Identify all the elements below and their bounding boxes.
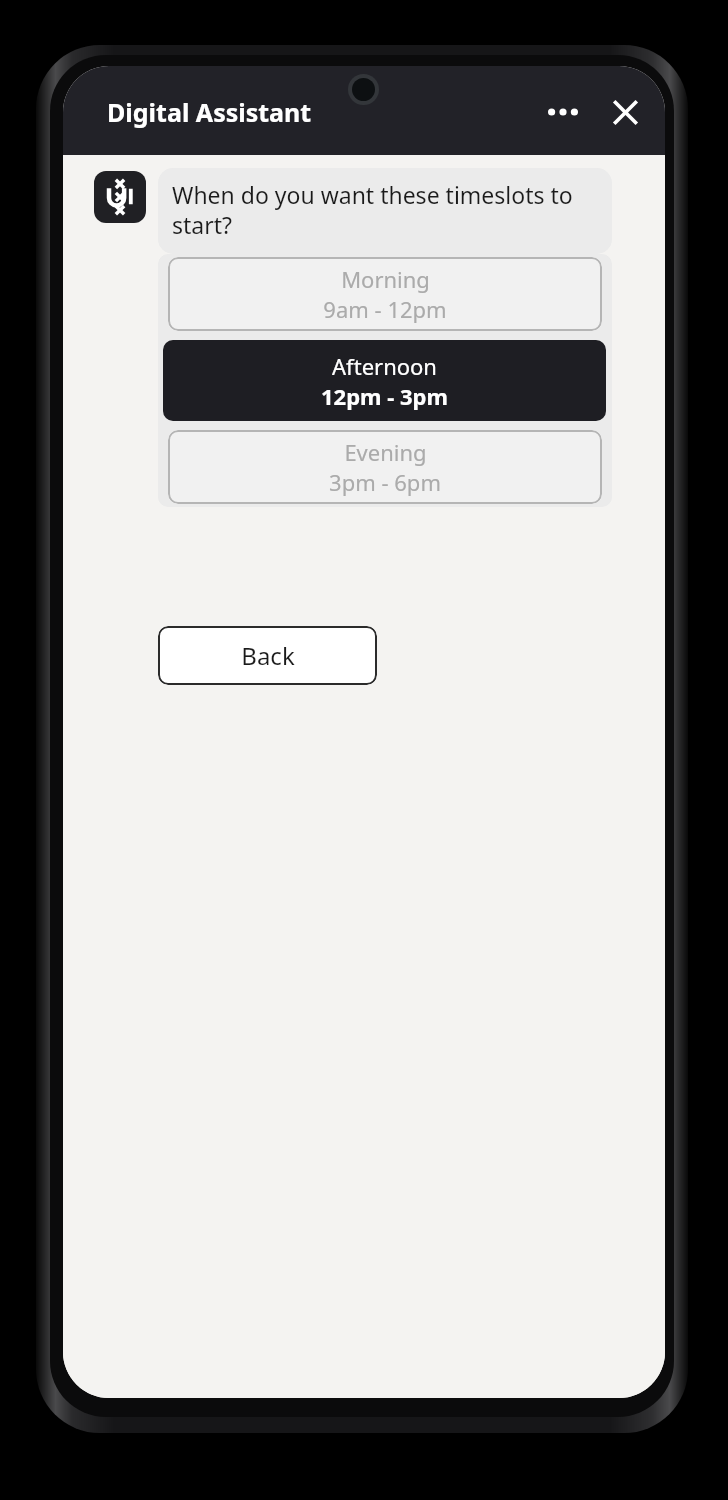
staticText: 3pm - 6pm	[329, 467, 441, 497]
button[interactable]: Back	[158, 626, 377, 685]
other: Assistant avatar	[94, 171, 146, 223]
button[interactable]: Close	[598, 85, 652, 139]
staticText: When do you want these timeslots to star…	[172, 179, 598, 241]
staticText: Morning	[341, 264, 430, 294]
staticText: Back	[241, 639, 295, 672]
button[interactable]: Afternoon	[163, 340, 606, 421]
button[interactable]: More options	[536, 85, 590, 139]
staticText: 12pm - 3pm	[321, 381, 448, 411]
button[interactable]: Morning	[168, 257, 602, 331]
button[interactable]: Evening	[168, 430, 602, 504]
staticText: 9am - 12pm	[323, 294, 447, 324]
staticText: Afternoon	[332, 351, 437, 381]
staticText: Digital Assistant	[107, 95, 312, 129]
staticText: Evening	[344, 437, 427, 467]
